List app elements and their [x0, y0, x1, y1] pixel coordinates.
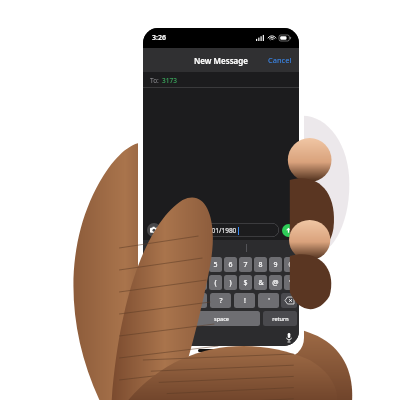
button[interactable]: CID 01/01/1980	[183, 223, 279, 237]
button[interactable]: 7	[239, 257, 252, 272]
staticText: @	[272, 278, 279, 288]
button[interactable]: 8	[254, 257, 267, 272]
button[interactable]: ABC	[145, 311, 179, 326]
button[interactable]: '	[258, 293, 279, 308]
staticText: 6	[228, 260, 233, 270]
button[interactable]: return	[263, 311, 297, 326]
button[interactable]: @	[269, 275, 282, 290]
button[interactable]: 3	[177, 257, 191, 272]
staticText: 5	[213, 260, 218, 270]
staticText: CID 01/01/1980	[189, 226, 237, 235]
button[interactable]: space	[182, 311, 260, 326]
staticText: !	[244, 296, 246, 306]
button[interactable]: $	[239, 275, 252, 290]
staticText: 3:26	[152, 33, 166, 43]
staticText: ;	[199, 278, 201, 288]
button[interactable]: )	[224, 275, 237, 290]
staticText: space	[214, 315, 229, 322]
button[interactable]	[195, 240, 247, 255]
button[interactable]: ;	[193, 275, 207, 290]
staticText: "	[289, 278, 292, 288]
staticText: 7	[243, 260, 248, 270]
button[interactable]: ?	[210, 293, 231, 308]
staticText: /	[167, 278, 170, 288]
button[interactable]: /	[161, 275, 175, 290]
button[interactable]: 1	[145, 257, 159, 272]
button[interactable]: (	[209, 275, 222, 290]
staticText: 9	[273, 260, 278, 270]
button[interactable]: &	[254, 275, 267, 290]
staticText: 2	[166, 260, 171, 270]
staticText: return	[272, 315, 289, 322]
button[interactable]: Camera	[147, 223, 161, 237]
staticText: 8	[258, 260, 263, 270]
staticText: 1	[150, 260, 155, 270]
button[interactable]: 6	[224, 257, 237, 272]
button[interactable]: !	[234, 293, 255, 308]
staticText: &	[258, 278, 264, 288]
button[interactable]: ,	[186, 293, 207, 308]
button[interactable]: 0	[284, 257, 297, 272]
button[interactable]: Backspace	[281, 293, 297, 308]
staticText: 0	[288, 260, 293, 270]
button[interactable]	[247, 240, 299, 255]
staticText: Cancel	[268, 55, 292, 65]
button[interactable]: Dictation	[283, 332, 294, 343]
button[interactable]: Cancel	[261, 51, 299, 69]
button[interactable]: 2	[161, 257, 175, 272]
staticText: ?	[219, 296, 223, 306]
button[interactable]: #+=	[145, 293, 161, 308]
button[interactable]: "	[284, 275, 297, 290]
button[interactable]: Emoji	[148, 332, 159, 343]
staticText: To:	[150, 76, 159, 85]
staticText: '	[268, 296, 270, 306]
button[interactable]: .	[163, 293, 183, 308]
button[interactable]: To:	[143, 72, 299, 88]
staticText: 3173	[162, 76, 177, 85]
staticText: ,	[196, 296, 198, 306]
staticText: 3	[182, 260, 187, 270]
button[interactable]: -	[145, 275, 159, 290]
staticText: -	[151, 278, 154, 288]
staticText: )	[229, 278, 232, 288]
button[interactable]: 9	[269, 257, 282, 272]
staticText: (	[214, 278, 217, 288]
staticText: :	[183, 278, 185, 288]
staticText: $	[243, 278, 248, 288]
button[interactable]: "1980"	[143, 240, 195, 255]
button[interactable]: 4	[193, 257, 207, 272]
button[interactable]: :	[177, 275, 191, 290]
button[interactable]: 5	[209, 257, 222, 272]
button[interactable]: Send	[282, 224, 295, 237]
staticText: New Message	[194, 55, 248, 66]
